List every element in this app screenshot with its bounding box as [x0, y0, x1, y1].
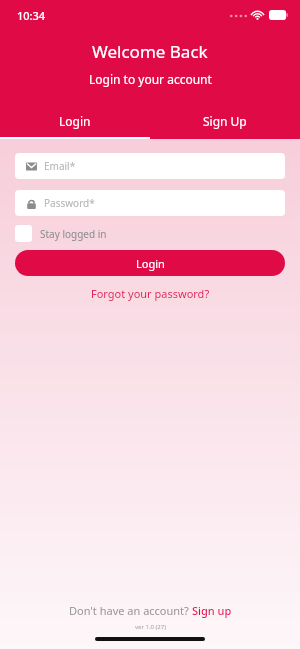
button[interactable]: Password*: [15, 190, 285, 216]
button[interactable]: Login: [15, 250, 285, 276]
staticText: Login: [136, 256, 165, 271]
staticText: ver 1.0 (27): [135, 623, 166, 631]
button[interactable]: Login: [0, 113, 150, 139]
button[interactable]: Email*: [15, 153, 285, 179]
other: Home indicator: [95, 637, 205, 641]
staticText: Sign up: [192, 603, 232, 618]
staticText: Login: [59, 113, 91, 129]
button[interactable]: Stay logged in: [15, 225, 113, 242]
button[interactable]: Forgot your password?: [85, 284, 216, 303]
staticText: Don't have an account?: [69, 603, 192, 618]
staticText: Email*: [44, 159, 76, 173]
staticText: 10:34: [17, 8, 46, 23]
button[interactable]: Sign Up: [150, 113, 300, 139]
staticText: Welcome Back: [92, 40, 208, 63]
button[interactable]: Sign up: [192, 603, 232, 618]
staticText: Login to your account: [89, 71, 212, 87]
staticText: Stay logged in: [40, 227, 107, 241]
staticText: Forgot your password?: [91, 286, 210, 301]
staticText: Sign Up: [203, 113, 247, 129]
staticText: Password*: [44, 196, 95, 210]
